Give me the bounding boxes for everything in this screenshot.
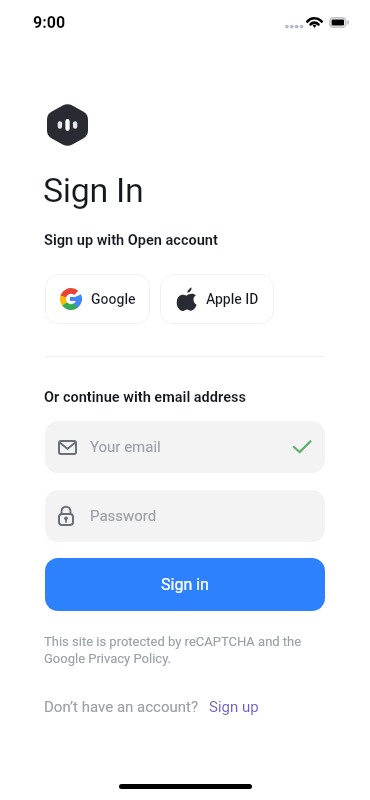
staticText: Google xyxy=(91,291,136,307)
button[interactable]: Sign up xyxy=(209,698,259,716)
staticText: Sign In xyxy=(43,170,144,210)
staticText: Sign in xyxy=(161,575,209,594)
staticText: Don’t have an account? xyxy=(44,698,199,716)
button[interactable]: Google xyxy=(45,274,150,324)
button[interactable]: Apple ID xyxy=(160,274,274,324)
button[interactable]: Your email xyxy=(45,421,325,473)
staticText: 9:00 xyxy=(33,13,66,32)
button[interactable]: Sign in xyxy=(45,558,325,611)
staticText: Password xyxy=(90,507,157,525)
button[interactable]: Password xyxy=(45,490,325,542)
staticText: This site is protected by reCAPTCHA and … xyxy=(44,634,302,667)
staticText: Or continue with email address xyxy=(44,389,246,406)
staticText: Apple ID xyxy=(206,291,259,307)
staticText: Sign up with Open account xyxy=(44,232,218,249)
staticText: Sign up xyxy=(209,698,259,716)
staticText: Your email xyxy=(90,438,161,456)
